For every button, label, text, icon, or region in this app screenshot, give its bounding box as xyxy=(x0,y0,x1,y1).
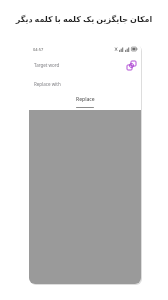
staticText: امکان جایگزین یک کلمه با کلمه دیگر xyxy=(0,13,168,24)
staticText: Replace with xyxy=(34,81,61,87)
button[interactable]: Replace xyxy=(29,94,141,104)
button[interactable]: Replace with xyxy=(29,78,141,90)
staticText: Replace xyxy=(76,96,95,103)
button[interactable]: Target word xyxy=(29,57,141,73)
staticText: Target word xyxy=(34,62,60,68)
staticText: 04:57 xyxy=(33,47,44,52)
button[interactable]: Duplicate xyxy=(126,60,137,71)
